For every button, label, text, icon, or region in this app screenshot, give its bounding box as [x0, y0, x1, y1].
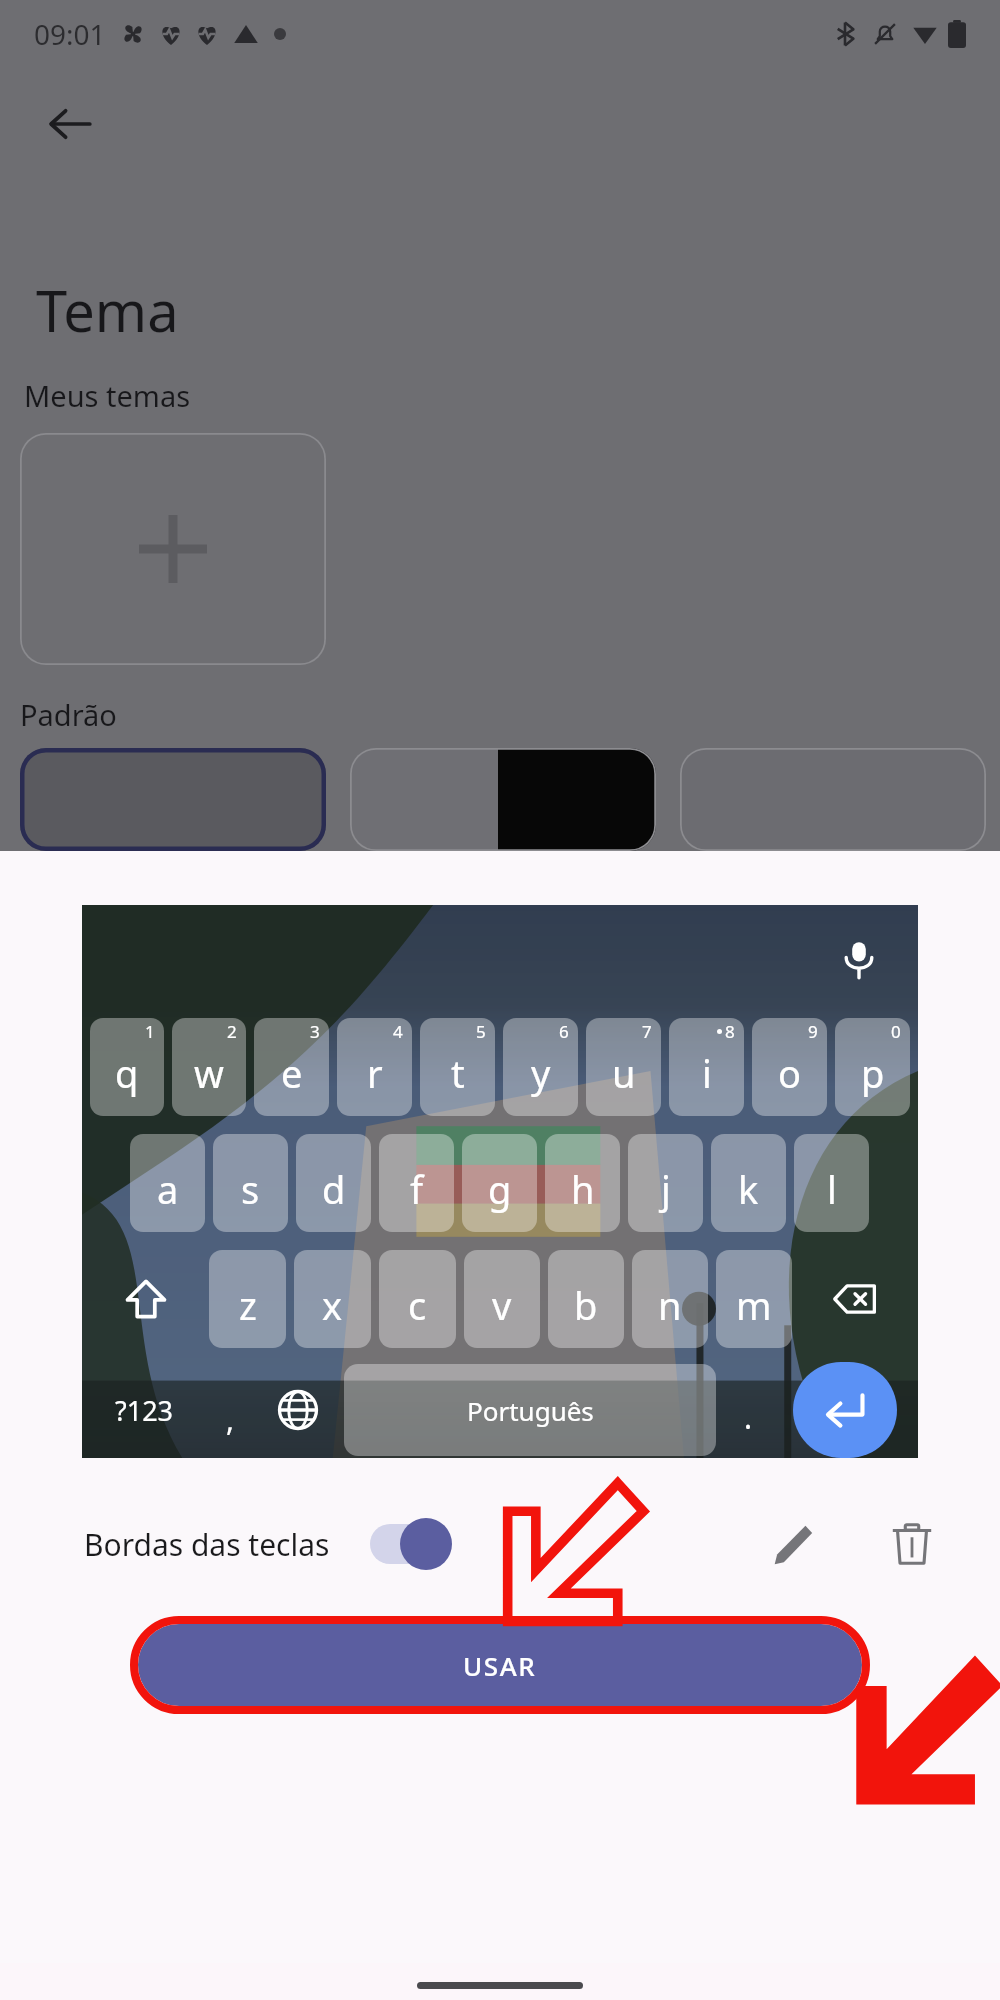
staticText: 4	[393, 1020, 403, 1043]
button[interactable]: f	[379, 1134, 454, 1232]
staticText: q	[115, 1047, 139, 1099]
button[interactable]: Backspace	[800, 1250, 910, 1348]
button[interactable]: 7	[586, 1018, 661, 1116]
button[interactable]: ,	[203, 1361, 257, 1458]
button[interactable]: USAR	[138, 1624, 862, 1706]
staticText: USAR	[463, 1648, 537, 1683]
button[interactable]: j	[628, 1134, 703, 1232]
button[interactable]: Add theme	[20, 433, 326, 665]
button[interactable]	[350, 748, 656, 851]
staticText: z	[239, 1279, 257, 1331]
staticText: 3	[310, 1020, 320, 1043]
staticText: n	[658, 1279, 682, 1331]
staticText: f	[410, 1163, 424, 1215]
button[interactable]: Change language	[261, 1361, 335, 1458]
staticText: .	[744, 1397, 753, 1438]
staticText: p	[861, 1047, 885, 1099]
button[interactable]: 8	[669, 1018, 744, 1116]
staticText: Tema	[36, 272, 179, 348]
staticText: 1	[145, 1020, 155, 1043]
button[interactable]: l	[794, 1134, 869, 1232]
button[interactable]: Enter	[793, 1362, 897, 1458]
button[interactable]: d	[296, 1134, 371, 1232]
button[interactable]: c	[379, 1250, 456, 1348]
staticText: b	[574, 1279, 598, 1331]
button[interactable]: Voice input	[830, 930, 888, 988]
staticText: i	[702, 1047, 712, 1099]
button[interactable]: h	[545, 1134, 620, 1232]
staticText: 9	[808, 1020, 818, 1043]
button[interactable]: 6	[503, 1018, 578, 1116]
staticText: Bordas das teclas	[84, 1524, 330, 1565]
button[interactable]	[20, 748, 326, 851]
button[interactable]: Back	[28, 82, 112, 166]
staticText: m	[736, 1279, 772, 1331]
button[interactable]: 0	[835, 1018, 910, 1116]
button[interactable]: a	[130, 1134, 205, 1232]
button[interactable]: 9	[752, 1018, 827, 1116]
staticText: 7	[642, 1020, 652, 1043]
staticText: x	[322, 1279, 343, 1331]
staticText: w	[194, 1047, 224, 1099]
staticText: 6	[559, 1020, 569, 1043]
button[interactable]: Português	[344, 1364, 716, 1456]
staticText: 8	[725, 1020, 735, 1043]
button[interactable]	[680, 748, 986, 851]
staticText: g	[488, 1163, 512, 1215]
staticText: 2	[227, 1020, 237, 1043]
staticText: Meus temas	[24, 376, 191, 415]
button[interactable]: Voice input	[82, 905, 918, 1458]
button[interactable]: b	[548, 1250, 624, 1348]
staticText: s	[241, 1163, 260, 1215]
button[interactable]: n	[632, 1250, 708, 1348]
button[interactable]: 3	[254, 1018, 329, 1116]
staticText: e	[281, 1047, 303, 1099]
button[interactable]: Delete	[864, 1496, 960, 1592]
staticText: h	[571, 1163, 595, 1215]
button[interactable]: k	[711, 1134, 786, 1232]
staticText: v	[492, 1279, 512, 1331]
staticText: t	[451, 1047, 465, 1099]
staticText: 5	[476, 1020, 486, 1043]
staticText: Padrão	[20, 695, 117, 734]
staticText: k	[738, 1163, 759, 1215]
button[interactable]: 2	[172, 1018, 246, 1116]
staticText: 0	[891, 1020, 901, 1043]
button[interactable]: x	[294, 1250, 371, 1348]
staticText: ,	[226, 1399, 235, 1440]
button[interactable]: Shift	[90, 1250, 201, 1348]
button[interactable]: 1	[90, 1018, 164, 1116]
button[interactable]: z	[209, 1250, 286, 1348]
staticText: y	[531, 1047, 551, 1099]
button[interactable]: Key borders toggle	[366, 1517, 452, 1571]
staticText: 09:01	[34, 15, 106, 53]
staticText: u	[612, 1047, 636, 1099]
staticText: j	[661, 1163, 671, 1215]
staticText: d	[322, 1163, 346, 1215]
staticText: o	[778, 1047, 801, 1099]
button[interactable]: s	[213, 1134, 288, 1232]
button[interactable]: ?123	[86, 1364, 203, 1456]
button[interactable]: g	[462, 1134, 537, 1232]
staticText: c	[408, 1279, 427, 1331]
button[interactable]: .	[721, 1361, 775, 1458]
button[interactable]: 4	[337, 1018, 412, 1116]
staticText: a	[157, 1163, 179, 1215]
button[interactable]: v	[464, 1250, 540, 1348]
button[interactable]: m	[716, 1250, 792, 1348]
staticText: ?123	[115, 1392, 174, 1429]
staticText: l	[827, 1163, 837, 1215]
button[interactable]: Edit	[744, 1496, 840, 1592]
button[interactable]: 5	[420, 1018, 495, 1116]
staticText: r	[367, 1047, 383, 1099]
staticText: Português	[467, 1393, 594, 1428]
